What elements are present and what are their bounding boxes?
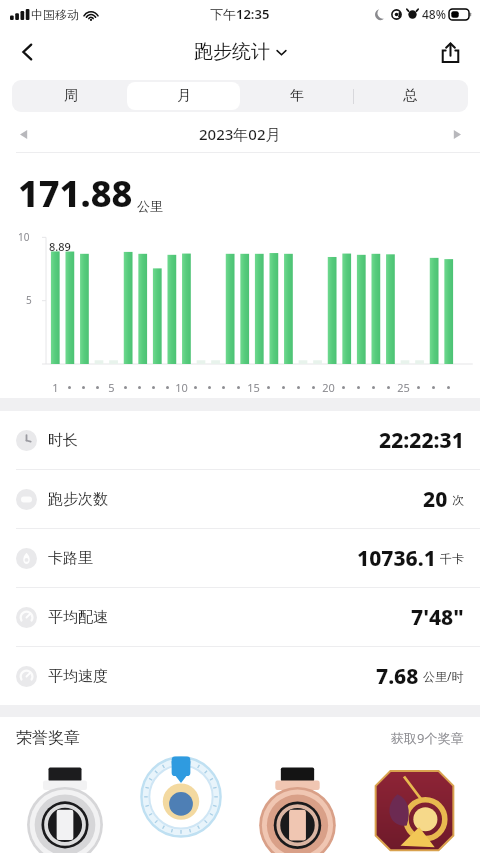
- button[interactable]: 平均配速: [0, 588, 480, 646]
- staticText: 2023年02月: [199, 124, 281, 144]
- staticText: 8.89: [49, 239, 71, 254]
- staticText: 171.88: [18, 169, 133, 218]
- staticText: 7.68: [376, 662, 419, 691]
- staticText: 48%: [422, 6, 446, 22]
- staticText: 10736.1: [357, 544, 436, 573]
- staticText: 周: [64, 87, 78, 105]
- button[interactable]: [359, 759, 470, 845]
- staticText: 1: [52, 380, 59, 395]
- button[interactable]: 周: [14, 82, 127, 110]
- staticText: 公里/时: [423, 668, 464, 684]
- staticText: 跑步次数: [48, 490, 108, 509]
- staticText: 千卡: [440, 551, 464, 566]
- staticText: 15: [247, 380, 260, 395]
- staticText: 中国移动: [31, 7, 79, 22]
- staticText: 年: [290, 87, 304, 105]
- button[interactable]: Next month: [440, 118, 472, 150]
- staticText: 平均配速: [48, 608, 108, 627]
- staticText: 获取9个奖章: [391, 729, 464, 747]
- button[interactable]: 时长: [0, 411, 480, 469]
- button[interactable]: Back: [6, 30, 50, 74]
- staticText: 月: [177, 87, 191, 105]
- button[interactable]: 月: [127, 82, 240, 110]
- staticText: 卡路里: [48, 549, 93, 568]
- staticText: 时长: [48, 431, 78, 450]
- staticText: 跑步统计: [194, 40, 270, 64]
- staticText: 10: [175, 380, 188, 395]
- button[interactable]: 总: [353, 82, 466, 110]
- button[interactable]: 平均速度: [0, 647, 480, 705]
- button[interactable]: Share: [428, 30, 472, 74]
- button[interactable]: [126, 759, 236, 845]
- button[interactable]: 跑步统计: [194, 40, 287, 64]
- button[interactable]: 年: [240, 82, 353, 110]
- staticText: 20: [423, 485, 448, 514]
- staticText: 25: [397, 380, 410, 395]
- staticText: 7'48": [411, 603, 464, 632]
- staticText: 5: [26, 293, 32, 307]
- button[interactable]: [10, 759, 120, 845]
- button[interactable]: [242, 759, 353, 845]
- staticText: 20: [322, 380, 335, 395]
- staticText: 公里: [137, 198, 163, 214]
- button[interactable]: 卡路里: [0, 529, 480, 587]
- button[interactable]: Previous month: [8, 118, 40, 150]
- staticText: 总: [403, 87, 417, 105]
- staticText: 下午12:35: [210, 5, 270, 23]
- button[interactable]: 获取9个奖章: [391, 729, 464, 747]
- staticText: 次: [452, 492, 464, 507]
- staticText: 10: [18, 230, 30, 244]
- button[interactable]: 跑步次数: [0, 470, 480, 528]
- staticText: 平均速度: [48, 667, 108, 686]
- staticText: 荣誉奖章: [16, 728, 80, 748]
- staticText: 22:22:31: [379, 426, 464, 455]
- staticText: 5: [108, 380, 115, 395]
